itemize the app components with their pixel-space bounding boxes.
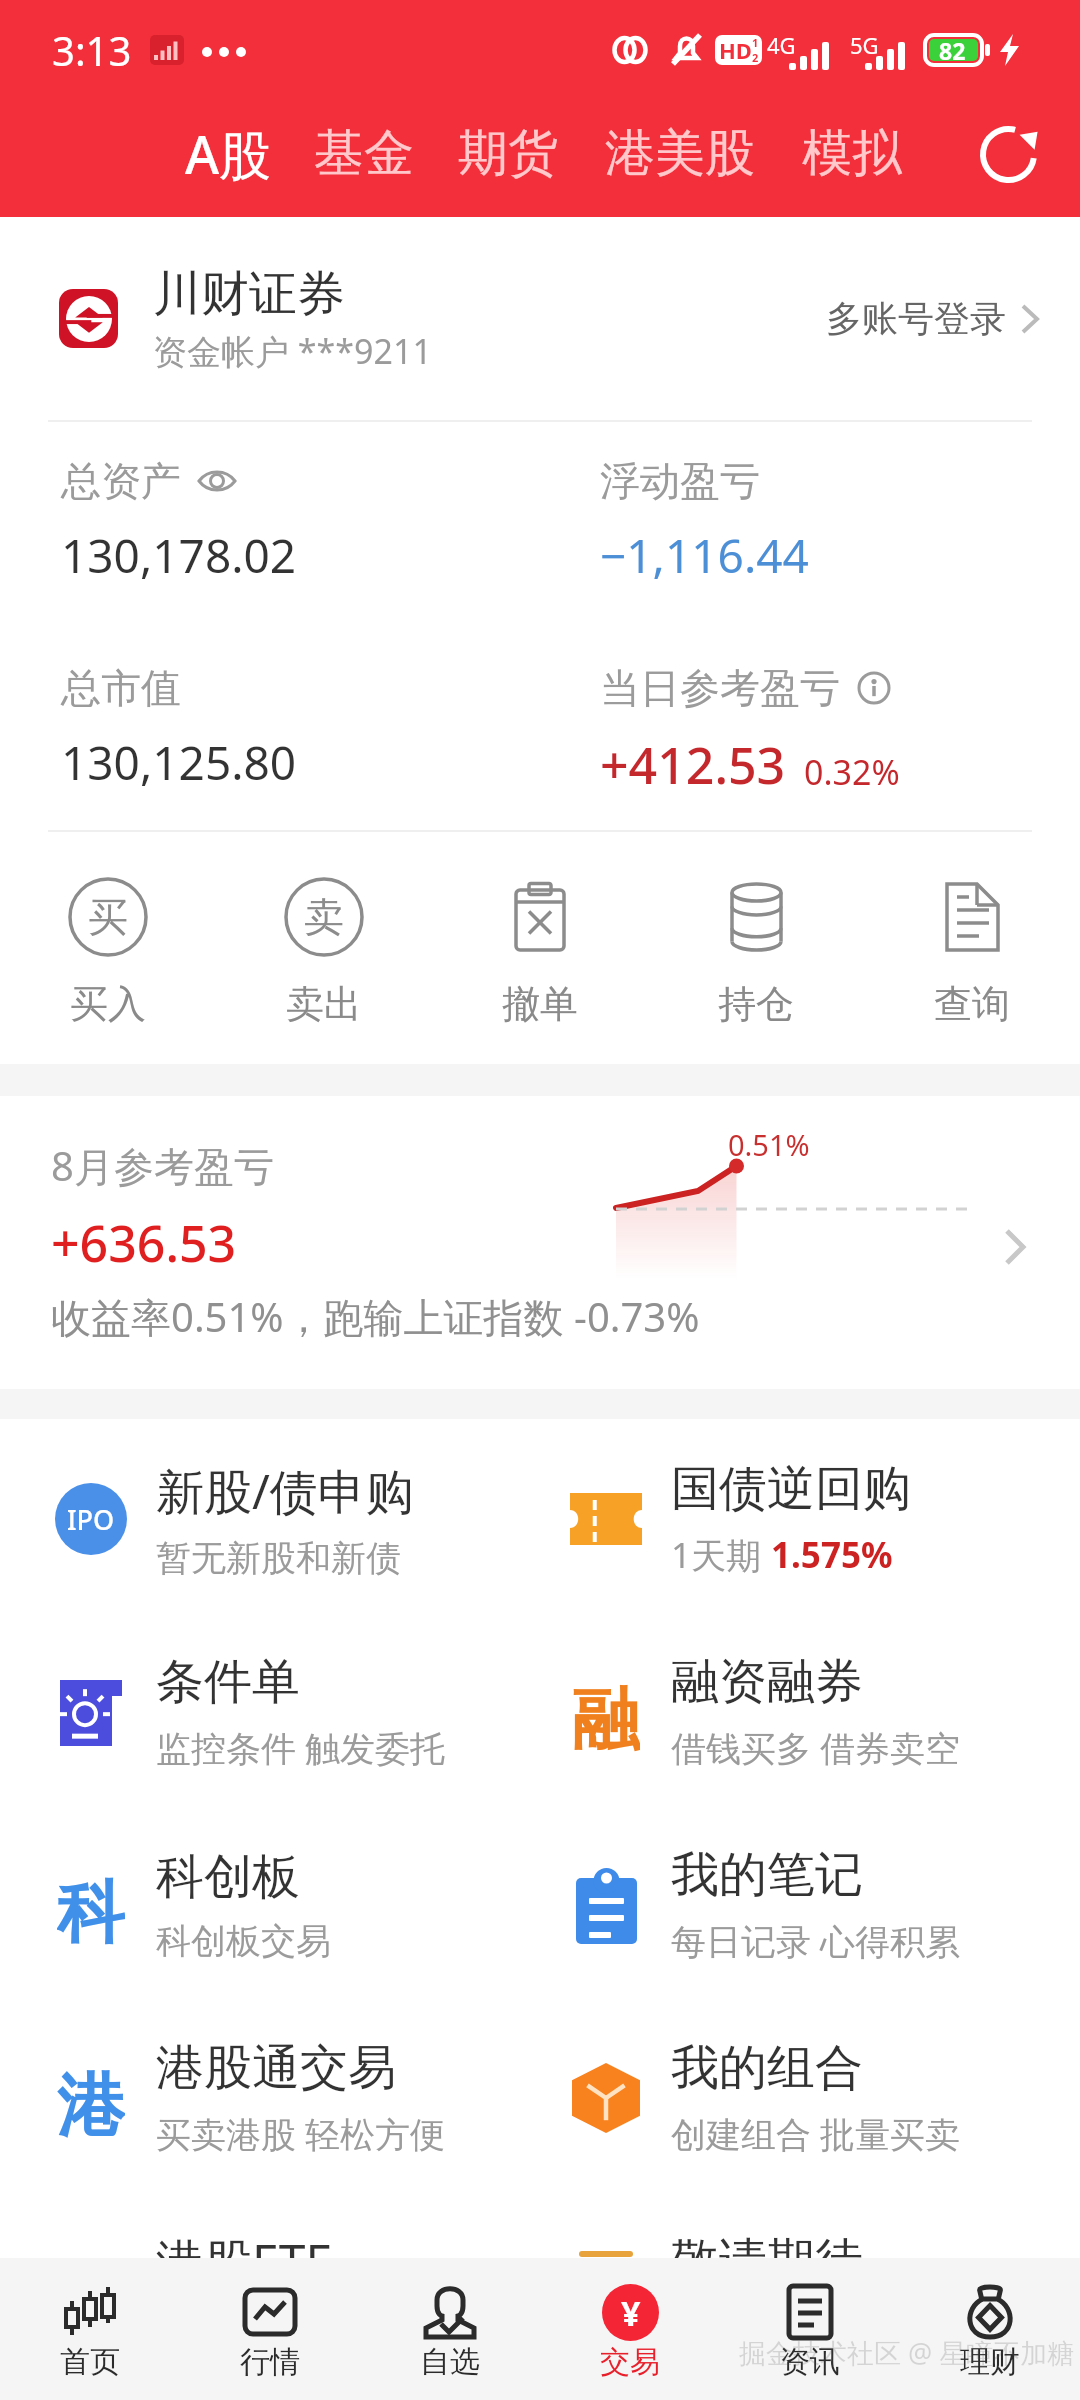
button[interactable]: 我的组合 (540, 2001, 1080, 2194)
button[interactable]: 港 (0, 2001, 540, 2194)
staticText: ¥ (621, 2290, 641, 2336)
staticText: IPO (67, 1501, 115, 1538)
staticText: 82 (939, 35, 966, 66)
staticText: 融 (572, 1678, 640, 1756)
staticText: 1.575% (771, 1531, 893, 1579)
staticText: 期货 (458, 122, 558, 185)
staticText: 创建组合 批量买卖 (671, 2110, 961, 2158)
button[interactable]: 行情 (180, 2258, 360, 2400)
staticText: 港股通交易 (156, 2038, 396, 2098)
button[interactable]: 融 (540, 1615, 1080, 1808)
button[interactable]: A股 (183, 102, 274, 205)
other: View monthly detail (1004, 1228, 1026, 1266)
staticText: 我的组合 (671, 2038, 863, 2098)
button[interactable]: 敬请期待 (540, 2194, 1080, 2387)
button[interactable]: 国债逆回购 (540, 1422, 1080, 1615)
staticText: 模拟 (802, 122, 902, 185)
button[interactable]: 持仓 (648, 832, 864, 1064)
button[interactable]: ¥ (540, 2258, 720, 2400)
staticText: 每日记录 心得积累 (671, 1917, 961, 1965)
staticText: 科创板交易 (156, 1919, 331, 1963)
button[interactable]: 查询 (864, 832, 1080, 1064)
staticText: 借钱买多 借券卖空 (671, 1724, 961, 1772)
staticText: 3:13 (52, 23, 132, 77)
button[interactable]: 科 (0, 1808, 540, 2001)
staticText: 新股/债申购 (156, 1458, 414, 1524)
staticText: 融资融券 (671, 1652, 863, 1712)
staticText: 监控条件 触发委托 (156, 1724, 446, 1772)
button[interactable]: IPO (0, 1422, 540, 1615)
staticText: 130,178.02 (61, 524, 297, 587)
staticText: 多账号登录 (826, 296, 1006, 341)
button[interactable]: 首页 (0, 2258, 180, 2400)
button[interactable]: 自选 (360, 2258, 540, 2400)
staticText: +636.53 (51, 1209, 237, 1277)
staticText: 4G (767, 30, 796, 60)
staticText: 买卖港股 轻松方便 (156, 2110, 446, 2158)
button[interactable]: 模拟 (800, 106, 904, 201)
staticText: 港 (57, 2257, 125, 2335)
button[interactable]: Refresh (962, 108, 1054, 200)
staticText: 2 (752, 50, 759, 65)
staticText: 资讯 (780, 2343, 840, 2381)
staticText: 0.51% (728, 1125, 810, 1164)
staticText: 卖出 (286, 980, 362, 1028)
button[interactable]: 理财 (900, 2258, 1080, 2400)
staticText: 当日参考盈亏 (600, 663, 840, 713)
staticText: 科 (57, 1871, 125, 1949)
staticText: 暂无新股和新债 (156, 1536, 401, 1580)
staticText: 自选 (420, 2343, 480, 2381)
staticText: 国债逆回购 (671, 1459, 911, 1519)
staticText: 总市值 (61, 663, 181, 713)
button[interactable]: 基金 (312, 106, 416, 201)
staticText: 查询 (934, 980, 1010, 1028)
staticText: 0.32% (804, 749, 900, 795)
button[interactable]: 港 (0, 2194, 540, 2387)
staticText: 买入 (70, 980, 146, 1028)
staticText: A股 (185, 118, 272, 189)
staticText: 持仓 (718, 980, 794, 1028)
staticText: −1,116.44 (600, 524, 809, 587)
staticText: 掘金技术社区 @ 星瞳不加糖 (739, 2334, 1075, 2371)
button[interactable]: 撤单 (432, 832, 648, 1064)
button[interactable]: 卖 (216, 832, 432, 1064)
button[interactable]: 买 (0, 832, 216, 1064)
staticText: 港 (57, 2064, 125, 2142)
staticText: 理财 (960, 2343, 1020, 2381)
staticText: 基金 (314, 122, 414, 185)
button[interactable]: 我的笔记 (540, 1808, 1080, 2001)
staticText: 条件单 (156, 1652, 300, 1712)
staticText: 浮动盈亏 (600, 456, 760, 506)
staticText: 8月参考盈亏 (51, 1138, 274, 1193)
staticText: 港股ETF (156, 2228, 331, 2294)
staticText: 行情 (240, 2343, 300, 2381)
staticText: 130,125.80 (61, 731, 297, 794)
staticText: 敬请期待 (671, 2231, 863, 2291)
button[interactable]: 条件单 (0, 1615, 540, 1808)
staticText: 川财证券 (153, 264, 345, 324)
button[interactable]: 0.51% (0, 1096, 1080, 1389)
staticText: 科创板 (156, 1847, 300, 1907)
button[interactable]: 资讯 (720, 2258, 900, 2400)
staticText: 撤单 (502, 980, 578, 1028)
staticText: 我的笔记 (671, 1845, 863, 1905)
staticText: 1天期 (671, 1531, 771, 1579)
staticText: HD (719, 35, 752, 65)
staticText: 总资产 (61, 456, 181, 506)
button[interactable]: 港美股 (603, 106, 757, 201)
button[interactable]: Toggle amount visibility (193, 464, 241, 498)
staticText: 1 (752, 35, 759, 50)
staticText: 港美股 (605, 122, 755, 185)
staticText: 卖 (304, 892, 344, 942)
button[interactable]: 期货 (456, 106, 560, 201)
staticText: 资金帐户 ***9211 (153, 328, 432, 374)
staticText: 5G (850, 30, 879, 60)
staticText: 交易 (600, 2343, 660, 2381)
button[interactable]: 川财证券 (0, 217, 1080, 420)
button[interactable]: Info (854, 668, 894, 708)
staticText: +412.53 (600, 731, 786, 799)
staticText: 收益率0.51%，跑输上证指数 -0.73% (51, 1289, 700, 1344)
staticText: 买 (88, 892, 128, 942)
